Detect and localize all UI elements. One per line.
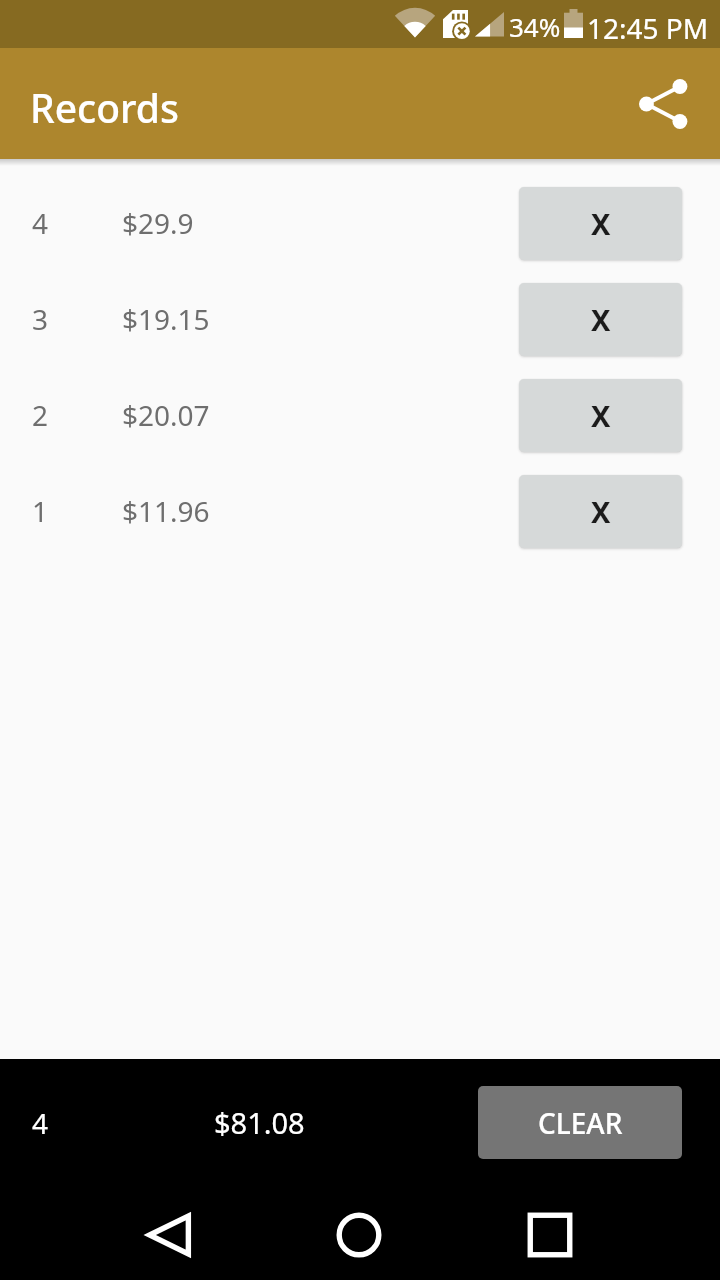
staticText: 4 [32,204,49,242]
staticText: $11.96 [122,492,210,530]
staticText: 4 [32,1104,49,1142]
staticText: 3 [32,300,49,338]
staticText: Records [30,81,179,134]
button[interactable]: X [519,283,682,356]
button[interactable]: Recents [510,1195,590,1275]
staticText: CLEAR [538,1104,623,1142]
button[interactable]: X [519,187,682,260]
button[interactable]: 2 [0,367,720,463]
staticText: $29.9 [122,204,194,242]
staticText: $19.15 [122,300,210,338]
button[interactable]: X [519,475,682,548]
staticText: X [591,396,611,435]
staticText: 12:45 PM [587,9,709,47]
staticText: 34% [509,9,561,44]
button[interactable]: Back [129,1195,209,1275]
staticText: 2 [32,396,49,434]
button[interactable]: 1 [0,463,720,559]
button[interactable]: 4 [0,175,720,271]
button[interactable]: Home [319,1195,399,1275]
staticText: $81.08 [214,1103,305,1142]
button[interactable]: X [519,379,682,452]
staticText: X [591,492,611,531]
button[interactable]: 3 [0,271,720,367]
staticText: X [591,204,611,243]
staticText: $20.07 [122,396,210,434]
staticText: X [591,300,611,339]
button[interactable]: CLEAR [478,1086,682,1159]
staticText: 1 [32,492,49,530]
button[interactable]: Share [624,64,704,144]
